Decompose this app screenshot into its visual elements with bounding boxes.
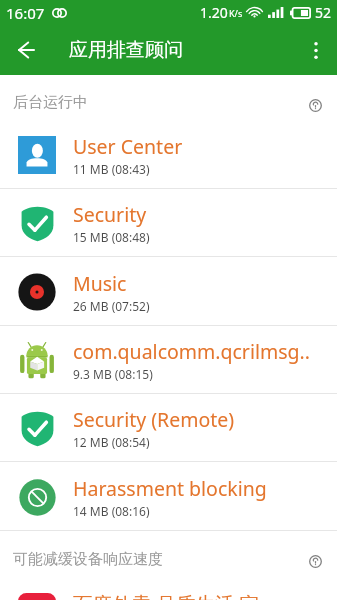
button[interactable]: More options [295, 29, 337, 71]
staticText: 52 [315, 3, 332, 22]
staticText: 15 MB (08:48) [73, 229, 150, 245]
staticText: 9.3 MB (08:15) [73, 366, 153, 382]
staticText: 14 MB (08:16) [73, 503, 150, 519]
button[interactable]: Harassment blocking [0, 462, 337, 531]
staticText: 百度外卖·品质生活·家 [73, 590, 259, 600]
button[interactable]: Security [0, 189, 337, 257]
button[interactable]: Music [0, 257, 337, 326]
staticText: 12 MB (08:54) [73, 434, 150, 450]
button[interactable]: User Center [0, 121, 337, 189]
button[interactable]: 百度外卖·品质生活·家 [0, 578, 337, 600]
staticText: Music [73, 270, 127, 297]
staticText: Harassment blocking [73, 475, 267, 502]
staticText: Security (Remote) [73, 406, 235, 433]
button[interactable]: Security (Remote) [0, 394, 337, 462]
staticText: com.qualcomm.qcrilmsg.. [73, 338, 310, 365]
staticText: Security [73, 201, 147, 228]
button[interactable]: Help [303, 93, 327, 117]
staticText: 后台运行中 [13, 93, 88, 112]
staticText: 16:07 [6, 3, 45, 23]
staticText: 应用排查顾问 [69, 38, 183, 62]
staticText: 26 MB (07:52) [73, 298, 150, 314]
button[interactable]: Help [303, 549, 327, 573]
button[interactable]: com.qualcomm.qcrilmsg.. [0, 326, 337, 394]
staticText: 1.20 [200, 3, 228, 22]
button[interactable]: Back [0, 25, 53, 75]
staticText: 可能减缓设备响应速度 [13, 550, 163, 569]
staticText: User Center [73, 133, 183, 160]
staticText: K/s [229, 7, 243, 19]
staticText: 11 MB (08:43) [73, 161, 150, 177]
